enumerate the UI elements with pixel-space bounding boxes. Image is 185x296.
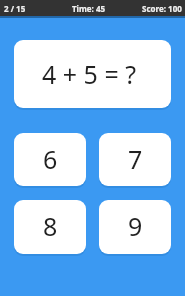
staticText: 9 <box>128 209 143 243</box>
staticText: 2 / 15 <box>4 3 26 14</box>
staticText: 7 <box>128 142 143 176</box>
button[interactable]: 4 + 5 = ? <box>14 40 171 108</box>
button[interactable]: 9 <box>99 200 171 254</box>
button[interactable]: 6 <box>14 133 86 186</box>
staticText: 8 <box>43 209 58 243</box>
staticText: 6 <box>43 142 58 176</box>
button[interactable]: 7 <box>99 133 171 186</box>
staticText: Time: 45 <box>72 3 106 14</box>
staticText: 4 + 5 = ? <box>42 57 137 91</box>
button[interactable]: 8 <box>14 200 86 254</box>
staticText: Score: 100 <box>142 3 182 14</box>
